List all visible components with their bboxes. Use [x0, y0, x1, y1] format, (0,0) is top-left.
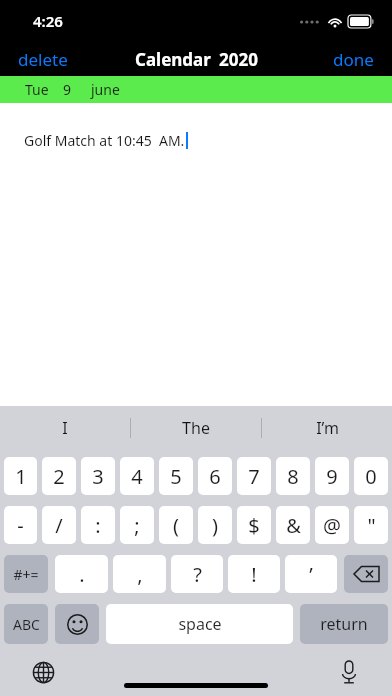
staticText: 6	[209, 463, 221, 490]
staticText: return	[320, 613, 368, 635]
button[interactable]: Tue	[0, 76, 392, 103]
button[interactable]: space	[106, 604, 293, 644]
button[interactable]: -	[4, 506, 37, 544]
button[interactable]: (	[159, 506, 193, 544]
staticText: 3	[92, 463, 104, 490]
staticText: :	[95, 512, 101, 539]
staticText: delete	[18, 48, 68, 71]
staticText: ;	[134, 512, 140, 539]
staticText: &	[286, 512, 301, 539]
button[interactable]: ABC	[4, 604, 48, 644]
staticText: (	[173, 512, 179, 539]
staticText: 4	[131, 463, 143, 490]
button[interactable]: Backspace	[344, 555, 388, 593]
button[interactable]: ,	[113, 555, 166, 593]
staticText: I	[62, 417, 68, 439]
button[interactable]: 5	[159, 457, 193, 495]
staticText: Tue	[25, 80, 49, 99]
button[interactable]: 4	[120, 457, 154, 495]
button[interactable]: 0	[354, 457, 388, 495]
button[interactable]: .	[55, 555, 108, 593]
staticText: .	[79, 561, 85, 588]
button[interactable]: 1	[4, 457, 37, 495]
button[interactable]: Dictation	[332, 655, 366, 689]
staticText: 9	[326, 463, 338, 490]
button[interactable]: ?	[171, 555, 223, 593]
button[interactable]: Emoji	[55, 604, 99, 644]
button[interactable]: &	[276, 506, 310, 544]
staticText: $	[248, 512, 260, 539]
staticText: ,	[137, 561, 143, 588]
button[interactable]: Change keyboard language	[26, 655, 60, 689]
staticText: june	[91, 80, 120, 99]
staticText: 2	[53, 463, 65, 490]
button[interactable]: /	[42, 506, 76, 544]
button[interactable]: !	[228, 555, 280, 593]
button[interactable]: 7	[237, 457, 271, 495]
staticText: )	[212, 512, 218, 539]
staticText: 4:26	[33, 11, 63, 31]
button[interactable]: 3	[81, 457, 115, 495]
staticText: ?	[193, 561, 202, 588]
button[interactable]: 8	[276, 457, 310, 495]
button[interactable]: "	[354, 506, 388, 544]
button[interactable]: 2	[42, 457, 76, 495]
button[interactable]: ;	[120, 506, 154, 544]
staticText: 5	[170, 463, 182, 490]
button[interactable]: $	[237, 506, 271, 544]
staticText: 8	[287, 463, 299, 490]
staticText: 2020	[219, 48, 258, 71]
button[interactable]: ’	[285, 555, 337, 593]
staticText: !	[251, 561, 257, 588]
button[interactable]: delete	[0, 44, 86, 75]
staticText: /	[55, 512, 63, 539]
button[interactable]: @	[315, 506, 349, 544]
button[interactable]: 9	[315, 457, 349, 495]
staticText: 0	[365, 463, 377, 490]
staticText: Golf Match at 10:45 AM.	[24, 131, 185, 150]
staticText: @	[323, 512, 341, 539]
staticText: 1	[15, 463, 27, 490]
button[interactable]: I’m	[262, 406, 392, 450]
button[interactable]: #+=	[4, 555, 48, 593]
staticText: done	[333, 48, 374, 71]
staticText: 7	[248, 463, 260, 490]
button[interactable]: I	[0, 406, 130, 450]
staticText: 9	[63, 80, 72, 99]
staticText: #+=	[13, 565, 39, 584]
button[interactable]: The	[131, 406, 261, 450]
button[interactable]: Golf Match at 10:45 AM.	[0, 103, 392, 406]
button[interactable]: return	[300, 604, 388, 644]
button[interactable]: :	[81, 506, 115, 544]
staticText: Calendar	[135, 48, 211, 71]
staticText: ’	[309, 561, 313, 588]
button[interactable]: done	[315, 44, 392, 75]
button[interactable]: 6	[198, 457, 232, 495]
staticText: The	[182, 417, 210, 439]
staticText: "	[367, 512, 376, 539]
button[interactable]: )	[198, 506, 232, 544]
staticText: I’m	[316, 417, 339, 439]
staticText: space	[178, 613, 222, 635]
staticText: ABC	[13, 615, 40, 634]
staticText: -	[17, 512, 24, 539]
